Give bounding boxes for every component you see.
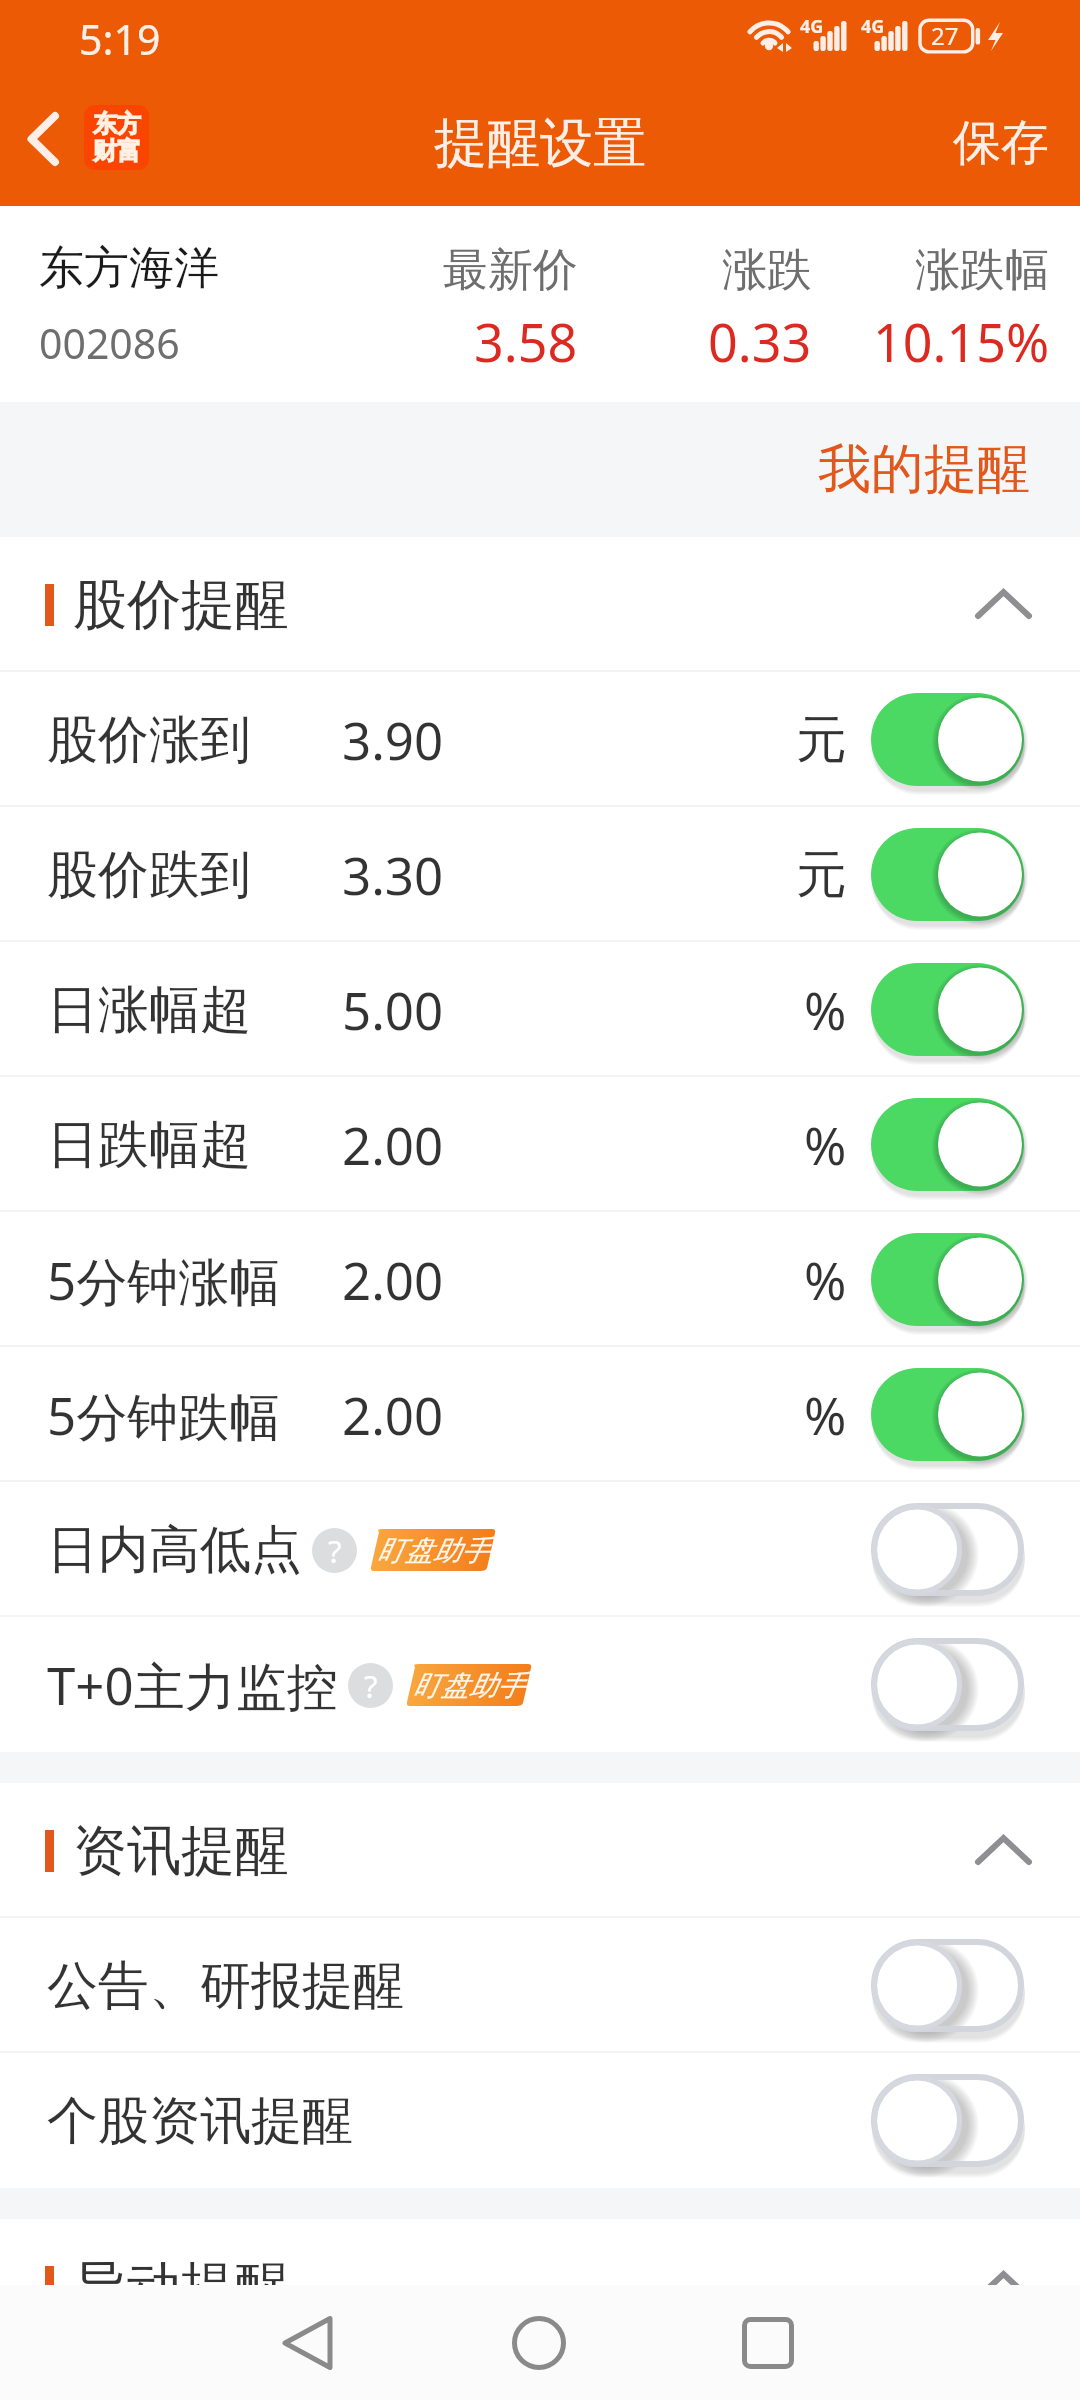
staticText: 涨跌幅: [915, 242, 1050, 299]
staticText: 002086: [39, 315, 180, 371]
button[interactable]: 个股资讯提醒: [0, 2053, 1080, 2188]
button[interactable]: 公告、研报提醒: [0, 1918, 1080, 2053]
staticText: 盯盘助手: [377, 1533, 489, 1568]
button[interactable]: 日涨幅超: [0, 942, 1080, 1077]
staticText: 股价提醒: [73, 571, 289, 639]
staticText: 东方: [93, 109, 141, 139]
button[interactable]: Toggle off: [857, 2060, 1038, 2181]
staticText: 公告、研报提醒: [47, 1954, 404, 2018]
staticText: ?: [364, 1665, 378, 1707]
staticText: 提醒设置: [434, 110, 646, 177]
staticText: 股价跌到: [47, 843, 251, 907]
button[interactable]: 5分钟涨幅: [0, 1212, 1080, 1347]
staticText: 2.00: [342, 1245, 444, 1314]
staticText: 涨跌: [722, 242, 812, 299]
button[interactable]: T+0主力监控: [0, 1617, 1080, 1752]
button[interactable]: Recent apps: [708, 2285, 828, 2400]
staticText: 4G: [800, 14, 824, 39]
staticText: 元: [796, 843, 847, 907]
button[interactable]: 我的提醒: [806, 422, 1042, 517]
button[interactable]: 股价提醒: [0, 537, 1080, 672]
staticText: 日跌幅超: [47, 1113, 251, 1177]
staticText: 3.90: [342, 705, 444, 774]
staticText: 2.00: [342, 1110, 444, 1179]
staticText: 5:19: [79, 11, 161, 67]
button[interactable]: Home: [479, 2285, 599, 2400]
button[interactable]: Toggle on: [857, 949, 1038, 1070]
button[interactable]: Toggle on: [857, 1354, 1038, 1475]
staticText: 个股资讯提醒: [47, 2089, 353, 2153]
button[interactable]: Toggle off: [857, 1489, 1038, 1610]
staticText: 我的提醒: [818, 436, 1030, 503]
staticText: 日内高低点: [47, 1518, 302, 1582]
staticText: %: [804, 1380, 847, 1449]
button[interactable]: Back: [248, 2285, 368, 2400]
staticText: 3.58: [474, 306, 578, 377]
staticText: 元: [796, 708, 847, 772]
staticText: 10.15%: [873, 306, 1050, 377]
staticText: 0.33: [708, 306, 812, 377]
button[interactable]: Toggle on: [857, 679, 1038, 800]
staticText: 2.00: [342, 1380, 444, 1449]
staticText: 3.30: [342, 840, 444, 909]
button[interactable]: 保存: [943, 93, 1059, 193]
staticText: 保存: [953, 113, 1049, 173]
button[interactable]: 日内高低点: [0, 1482, 1080, 1617]
button[interactable]: 异动提醒: [0, 2219, 1080, 2354]
staticText: %: [804, 1110, 847, 1179]
staticText: 异动提醒: [73, 2253, 289, 2321]
staticText: 日涨幅超: [47, 978, 251, 1042]
staticText: 4G: [861, 14, 885, 39]
staticText: 盯盘助手: [413, 1668, 525, 1703]
staticText: 5分钟跌幅: [47, 1380, 281, 1450]
staticText: T+0主力监控: [47, 1650, 338, 1720]
staticText: 财富: [93, 136, 141, 166]
button[interactable]: Toggle on: [857, 1219, 1038, 1340]
button[interactable]: 股价涨到: [0, 672, 1080, 807]
staticText: 5分钟涨幅: [47, 1245, 281, 1315]
button[interactable]: East Money logo: [84, 105, 149, 170]
button[interactable]: Toggle on: [857, 814, 1038, 935]
staticText: %: [804, 975, 847, 1044]
button[interactable]: Toggle off: [857, 1925, 1038, 2046]
staticText: %: [804, 1245, 847, 1314]
button[interactable]: Help: [348, 1663, 393, 1708]
staticText: 资讯提醒: [73, 1817, 289, 1885]
staticText: 最新价: [443, 242, 578, 299]
button[interactable]: Toggle on: [857, 1084, 1038, 1205]
button[interactable]: Toggle off: [857, 1624, 1038, 1745]
button[interactable]: 5分钟跌幅: [0, 1347, 1080, 1482]
staticText: 东方海洋: [39, 240, 219, 297]
button[interactable]: 股价跌到: [0, 807, 1080, 942]
staticText: ?: [328, 1530, 342, 1572]
button[interactable]: Back: [0, 80, 84, 206]
staticText: 27: [931, 19, 959, 52]
staticText: 5.00: [342, 975, 444, 1044]
staticText: 股价涨到: [47, 708, 251, 772]
button[interactable]: 日跌幅超: [0, 1077, 1080, 1212]
button[interactable]: 资讯提醒: [0, 1783, 1080, 1918]
button[interactable]: Help: [312, 1528, 357, 1573]
